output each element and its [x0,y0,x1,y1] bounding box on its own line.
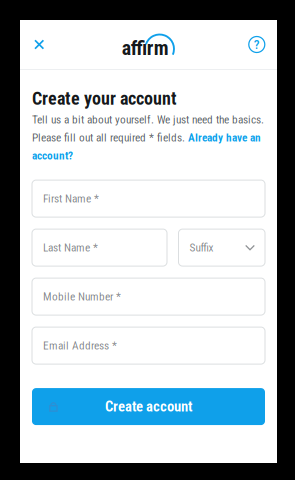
staticText: ? [254,37,260,52]
button[interactable]: Already have an [188,131,261,144]
staticText: Please fill out all required * fields. [32,131,188,144]
staticText: Mobile Number * [43,290,121,303]
staticText: Already have an [188,131,261,144]
staticText: Create your account [32,88,177,109]
staticText: affirm [122,36,169,60]
button[interactable]: account? [32,149,73,167]
staticText: Tell us a bit about yourself. We just ne… [32,113,264,126]
button[interactable]: Create account [32,388,265,425]
staticText: Last Name * [43,241,98,254]
staticText: Create account [105,398,192,415]
button[interactable]: Help [241,29,265,59]
staticText: Suffix [189,241,213,254]
staticText: Email Address * [43,339,117,352]
button[interactable]: Close [34,29,58,59]
staticText: First Name * [43,192,99,205]
staticText: account? [32,149,73,162]
